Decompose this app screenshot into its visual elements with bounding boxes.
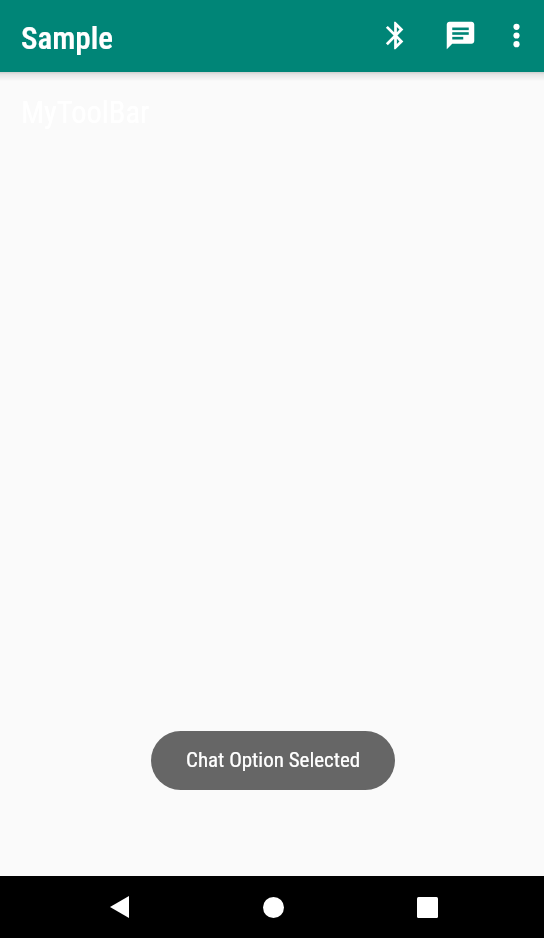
- button[interactable]: Recent apps: [387, 876, 467, 938]
- button[interactable]: More options: [490, 9, 543, 62]
- staticText: Sample: [21, 20, 113, 56]
- staticText: Chat Option Selected: [186, 748, 361, 773]
- button[interactable]: Home: [233, 876, 313, 938]
- button[interactable]: Bluetooth: [369, 9, 422, 62]
- button[interactable]: Chat: [434, 9, 487, 62]
- button[interactable]: Back: [79, 876, 159, 938]
